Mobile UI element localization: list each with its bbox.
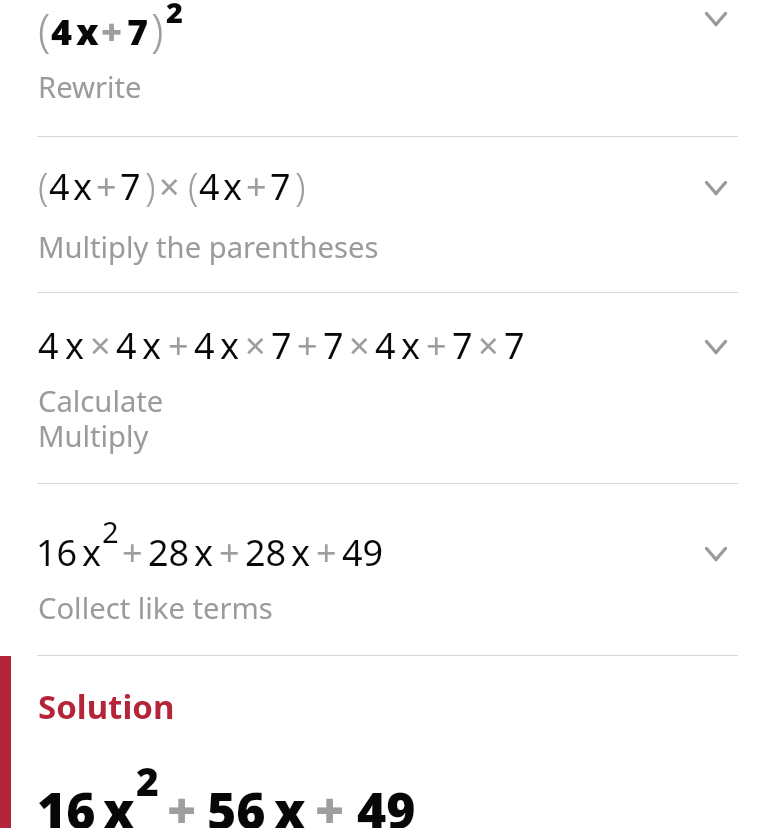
staticText: + [316, 528, 337, 577]
staticText: 49 [357, 776, 416, 828]
staticText: + [167, 776, 197, 828]
staticText: 16 [37, 776, 96, 828]
staticText: Calculate Multiply [38, 381, 164, 456]
staticText: + [219, 528, 240, 577]
staticText: + [297, 321, 318, 370]
staticText: x [65, 321, 85, 370]
staticText: + [315, 776, 345, 828]
staticText: × [245, 321, 266, 370]
staticText: 7 [271, 321, 292, 370]
staticText: ( [188, 160, 199, 212]
staticText: + [96, 162, 117, 211]
staticText: ) [295, 160, 306, 212]
staticText: 4 [49, 162, 70, 211]
staticText: ) [145, 160, 156, 212]
staticText: + [122, 528, 143, 577]
staticText: x [103, 776, 135, 828]
staticText: 28 [148, 528, 190, 577]
staticText: x [401, 321, 421, 370]
staticText: x [274, 776, 306, 828]
staticText: 28 [245, 528, 287, 577]
staticText: Collect like terms [38, 588, 273, 628]
staticText: 7 [127, 7, 149, 56]
staticText: × [90, 321, 111, 370]
staticText: 4 [194, 321, 215, 370]
staticText: 4 [116, 321, 137, 370]
button[interactable]: Expand Multiply the parentheses step [688, 160, 744, 216]
staticText: × [478, 321, 499, 370]
staticText: 4 [375, 321, 396, 370]
button[interactable]: Collect like terms step [0, 484, 768, 655]
staticText: Multiply the parentheses [38, 227, 379, 267]
staticText: x [220, 321, 240, 370]
staticText: ) [151, 0, 164, 60]
staticText: x [73, 162, 93, 211]
staticText: + [426, 321, 447, 370]
staticText: x [223, 162, 243, 211]
button[interactable]: Calculate, Multiply step [0, 293, 768, 483]
staticText: × [159, 162, 180, 211]
button[interactable]: Expand Collect like terms step [688, 526, 744, 582]
staticText: + [246, 162, 267, 211]
button[interactable]: Multiply the parentheses step [0, 137, 768, 292]
staticText: Solution [38, 684, 175, 729]
staticText: 2 [166, 0, 183, 31]
staticText: x [82, 528, 102, 577]
button[interactable]: Solution 16x squared plus 56x plus 49 [0, 656, 768, 828]
staticText: ( [38, 0, 51, 60]
staticText: 4 [51, 7, 73, 56]
staticText: 7 [270, 162, 291, 211]
staticText: 4 [38, 321, 59, 370]
staticText: x [291, 528, 311, 577]
staticText: 2 [136, 754, 159, 807]
staticText: + [168, 321, 189, 370]
staticText: 4 [199, 162, 220, 211]
staticText: ( [38, 160, 49, 212]
staticText: × [349, 321, 370, 370]
staticText: x [76, 7, 99, 56]
staticText: 7 [120, 162, 141, 211]
staticText: + [101, 7, 123, 56]
button[interactable]: Expand Calculate step [688, 319, 744, 375]
staticText: x [142, 321, 162, 370]
staticText: 16 [36, 528, 78, 577]
staticText: 7 [452, 321, 473, 370]
button[interactable]: Rewrite step [0, 0, 768, 136]
staticText: 56 [207, 776, 266, 828]
staticText: 49 [342, 528, 384, 577]
staticText: 7 [323, 321, 344, 370]
staticText: 2 [102, 512, 119, 551]
staticText: 7 [504, 321, 525, 370]
staticText: x [194, 528, 214, 577]
button[interactable]: Expand Rewrite step [688, 0, 744, 47]
staticText: Rewrite [38, 67, 142, 107]
